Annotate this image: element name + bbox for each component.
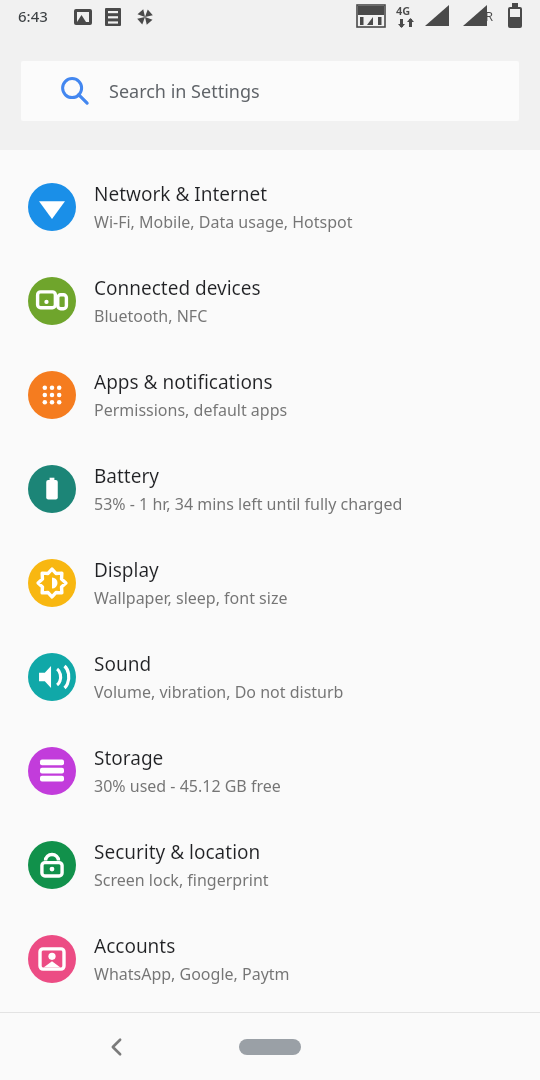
button[interactable]: Home bbox=[239, 1039, 301, 1055]
staticText: Volume, vibration, Do not disturb bbox=[94, 681, 344, 703]
staticText: Search in Settings bbox=[109, 79, 260, 104]
button[interactable]: Back bbox=[95, 1025, 139, 1069]
button[interactable]: Battery bbox=[0, 442, 540, 536]
button[interactable]: Display bbox=[0, 536, 540, 630]
staticText: 4G bbox=[396, 3, 411, 18]
button[interactable]: Accounts bbox=[0, 912, 540, 1006]
button[interactable]: Sound bbox=[0, 630, 540, 724]
staticText: Sound bbox=[94, 651, 152, 677]
staticText: Bluetooth, NFC bbox=[94, 305, 208, 327]
staticText: Accounts bbox=[94, 933, 176, 959]
staticText: Screen readers, display bbox=[94, 1047, 268, 1069]
staticText: Apps & notifications bbox=[94, 369, 273, 395]
staticText: 53% - 1 hr, 34 mins left until fully cha… bbox=[94, 493, 403, 515]
staticText: Network & Internet bbox=[94, 181, 268, 207]
staticText: Connected devices bbox=[94, 275, 261, 301]
button[interactable]: Connected devices bbox=[0, 254, 540, 348]
staticText: Display bbox=[94, 557, 159, 583]
staticText: Security & location bbox=[94, 839, 261, 865]
button[interactable]: Search in Settings bbox=[21, 61, 519, 121]
staticText: R bbox=[485, 7, 494, 25]
staticText: Wallpaper, sleep, font size bbox=[94, 587, 288, 609]
button[interactable]: Accessibility bbox=[0, 1006, 540, 1080]
staticText: Screen lock, fingerprint bbox=[94, 869, 269, 891]
staticText: WhatsApp, Google, Paytm bbox=[94, 963, 290, 985]
staticText: Battery bbox=[94, 463, 159, 489]
staticText: Accessibility bbox=[94, 1017, 202, 1043]
button[interactable]: Apps & notifications bbox=[0, 348, 540, 442]
staticText: Storage bbox=[94, 745, 164, 771]
button[interactable]: Storage bbox=[0, 724, 540, 818]
button[interactable]: Security & location bbox=[0, 818, 540, 912]
button[interactable]: Network & Internet bbox=[0, 160, 540, 254]
staticText: Wi-Fi, Mobile, Data usage, Hotspot bbox=[94, 211, 353, 233]
staticText: Permissions, default apps bbox=[94, 399, 288, 421]
staticText: 30% used - 45.12 GB free bbox=[94, 775, 281, 797]
staticText: 6:43 bbox=[18, 6, 48, 26]
